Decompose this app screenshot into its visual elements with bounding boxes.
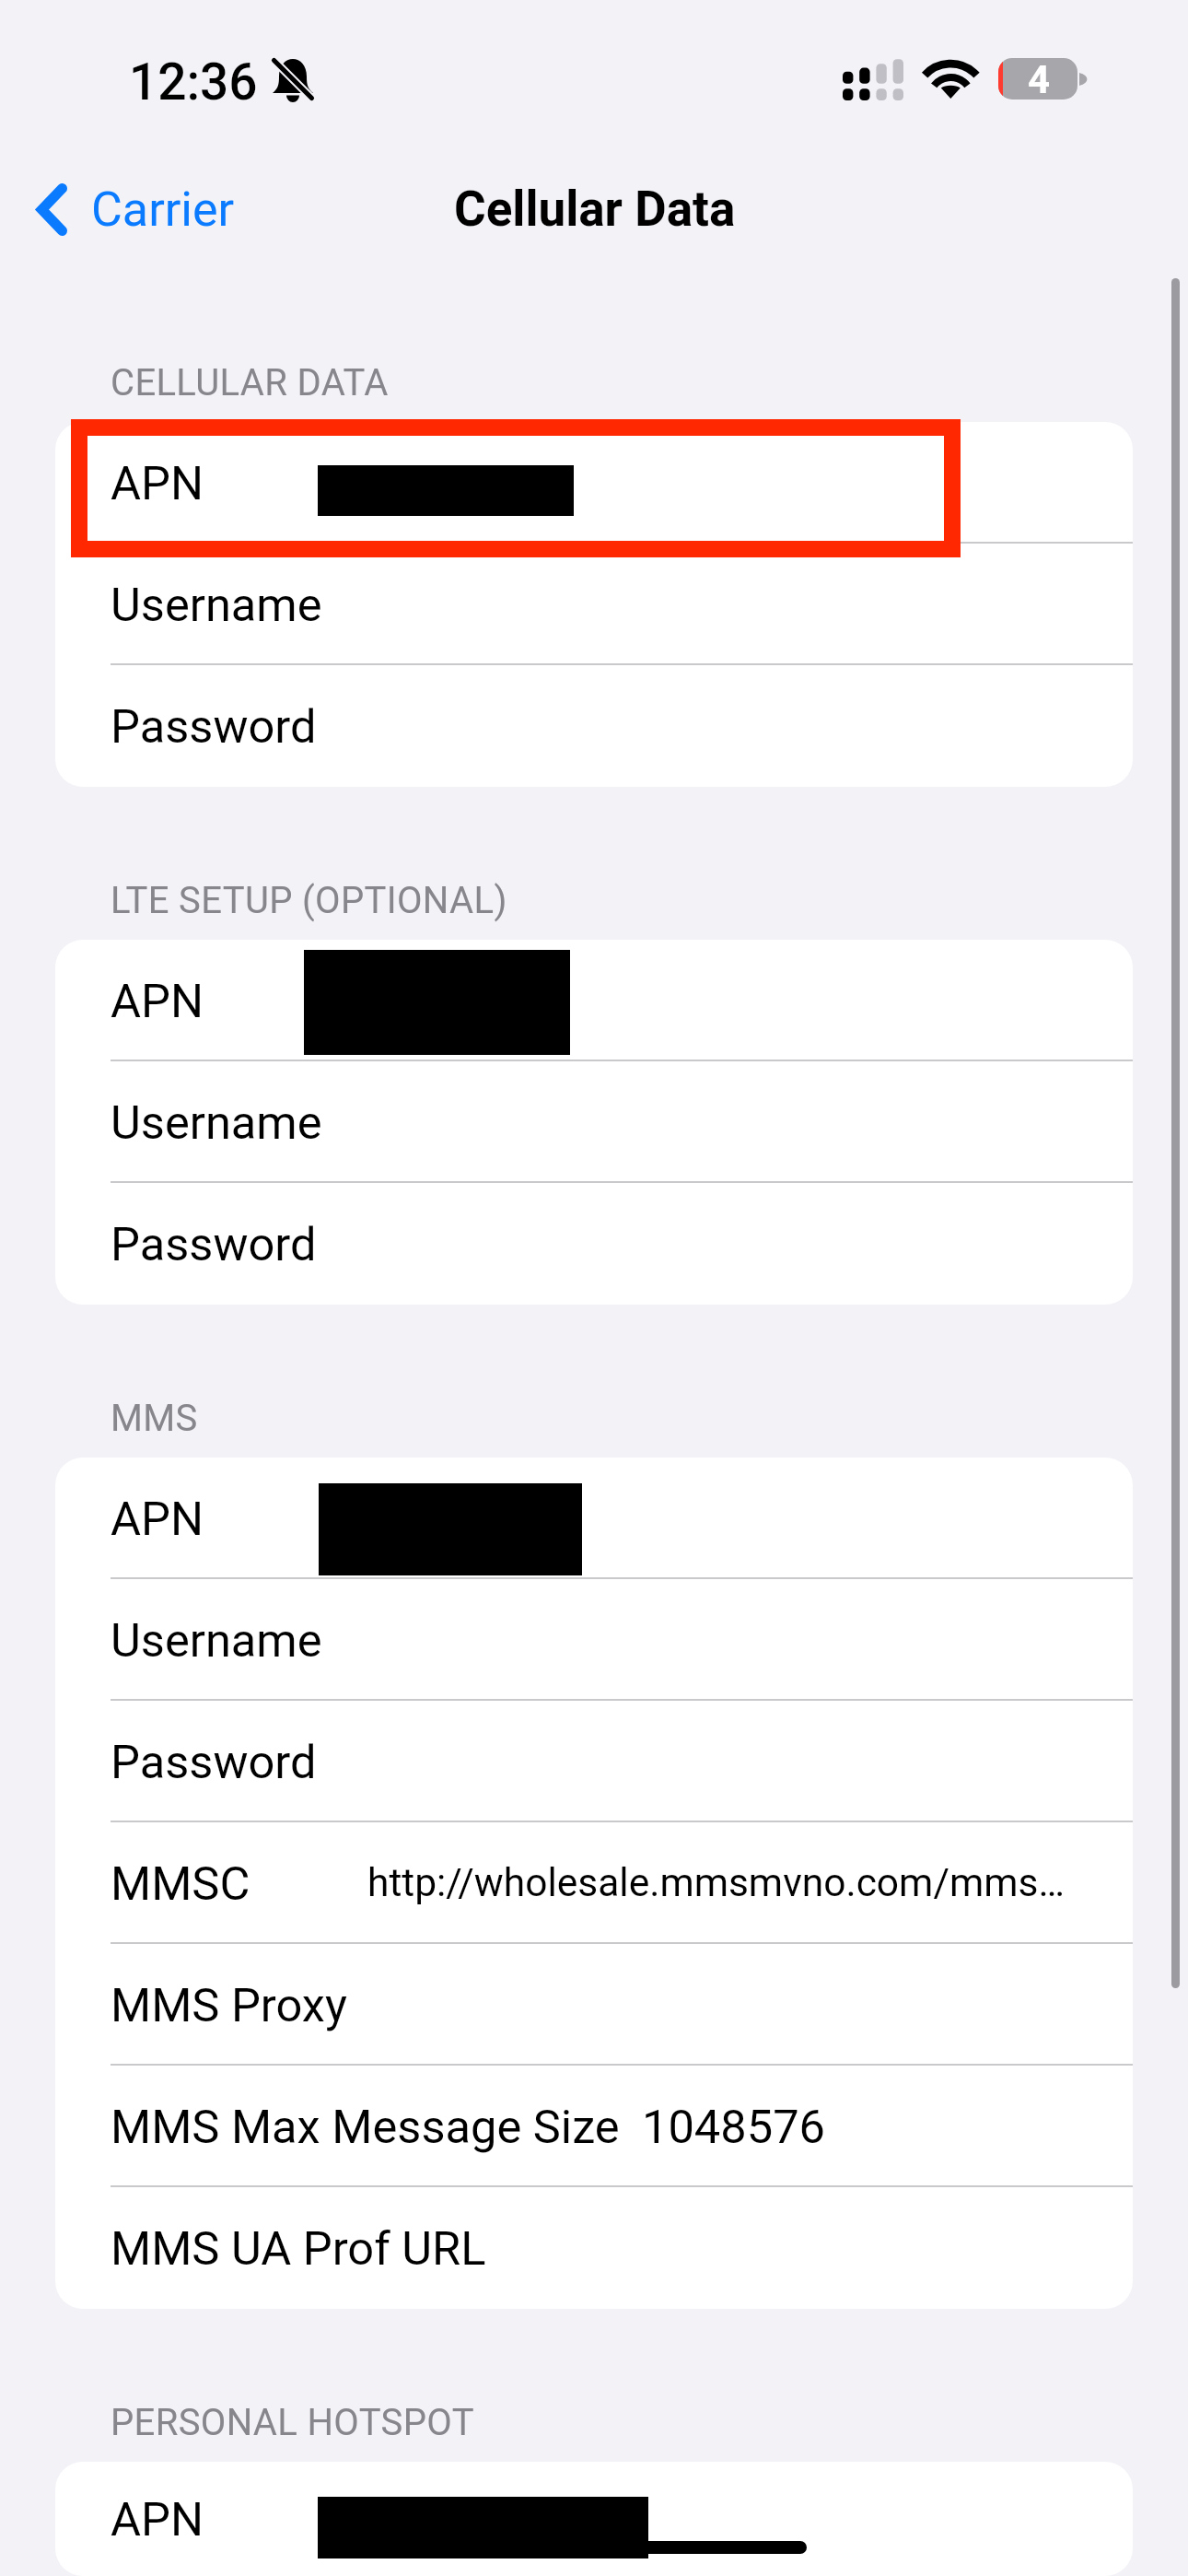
staticText: Carrier xyxy=(91,181,235,238)
button[interactable]: Username xyxy=(55,1579,1133,1701)
staticText: 1048576 xyxy=(642,2100,826,2154)
button[interactable]: MMSC xyxy=(55,1822,1133,1944)
button[interactable]: APN xyxy=(55,2462,1133,2576)
staticText: MMS Proxy xyxy=(111,1978,347,2032)
staticText: APN xyxy=(111,2492,204,2547)
button[interactable]: Password xyxy=(55,1701,1133,1822)
button[interactable]: APN xyxy=(55,1458,1133,1579)
other: Highlighted APN row xyxy=(71,419,961,557)
button[interactable]: Back to Carrier xyxy=(10,167,262,252)
staticText: Password xyxy=(111,699,317,754)
button[interactable]: Password xyxy=(55,665,1133,787)
staticText: APN xyxy=(111,974,204,1028)
button[interactable]: MMS Proxy xyxy=(55,1944,1133,2066)
staticText: APN xyxy=(111,1492,204,1546)
staticText: MMS xyxy=(111,1397,198,1440)
staticText: Password xyxy=(111,1217,317,1271)
staticText: Username xyxy=(111,578,322,632)
staticText: PERSONAL HOTSPOT xyxy=(111,2401,474,2444)
button[interactable]: Username xyxy=(55,544,1133,665)
staticText: 12:36 xyxy=(129,53,258,111)
button[interactable]: MMS UA Prof URL xyxy=(55,2187,1133,2309)
staticText: Username xyxy=(111,1613,322,1668)
button[interactable]: Password xyxy=(55,1183,1133,1305)
staticText: Cellular Data xyxy=(454,181,736,238)
staticText: Username xyxy=(111,1095,322,1150)
button[interactable]: MMS Max Message Size xyxy=(55,2066,1133,2187)
button[interactable]: Username xyxy=(55,1061,1133,1183)
button[interactable]: APN xyxy=(55,940,1133,1061)
button[interactable]: APN xyxy=(55,422,1133,544)
staticText: MMSC xyxy=(111,1856,250,1911)
staticText: 4 xyxy=(1028,58,1051,99)
staticText: http://wholesale.mmsmvno.com/mms… xyxy=(367,1860,1065,1906)
staticText: MMS Max Message Size xyxy=(111,2100,620,2154)
staticText: MMS UA Prof URL xyxy=(111,2221,486,2276)
staticText: CELLULAR DATA xyxy=(111,361,389,404)
staticText: LTE SETUP (OPTIONAL) xyxy=(111,879,507,922)
staticText: APN xyxy=(111,456,204,510)
staticText: Password xyxy=(111,1735,317,1789)
